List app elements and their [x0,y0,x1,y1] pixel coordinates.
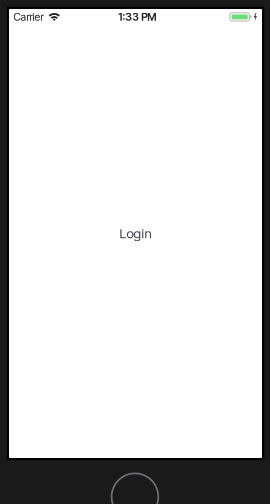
staticText: Login [119,225,151,241]
staticText: 1:33 PM [118,10,156,23]
button[interactable]: Login [119,225,151,241]
staticText: Carrier [13,10,43,23]
